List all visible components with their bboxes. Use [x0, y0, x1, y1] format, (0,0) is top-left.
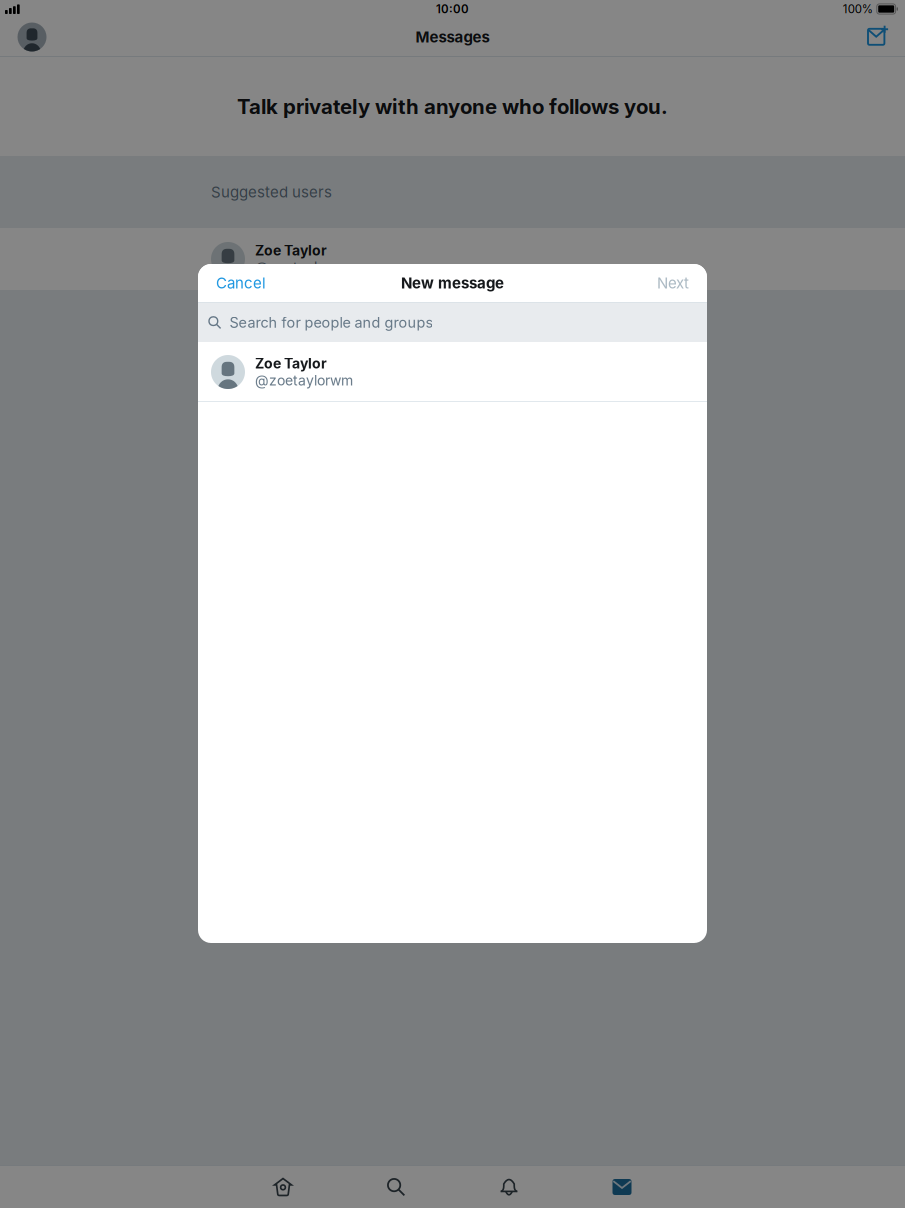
- button[interactable]: Next: [657, 265, 689, 301]
- button[interactable]: Search: [339, 1166, 452, 1208]
- button[interactable]: Profile: [0, 18, 64, 56]
- button[interactable]: Home: [226, 1166, 339, 1208]
- staticText: Suggested users: [211, 183, 332, 201]
- staticText: Cancel: [216, 274, 266, 292]
- staticText: Messages: [415, 28, 489, 46]
- staticText: 100%: [843, 2, 873, 16]
- button[interactable]: Zoe Taylor: [0, 228, 905, 290]
- staticText: New message: [401, 274, 504, 292]
- button[interactable]: Cancel: [216, 265, 266, 301]
- staticText: 10:00: [436, 2, 469, 16]
- button[interactable]: Messages: [565, 1166, 678, 1208]
- staticText: Search for people and groups: [229, 314, 433, 331]
- staticText: Talk privately with anyone who follows y…: [237, 94, 668, 119]
- button[interactable]: Zoe Taylor: [198, 342, 707, 402]
- staticText: @zoetaylorwm: [255, 259, 353, 276]
- staticText: @zoetaylorwm: [255, 372, 353, 389]
- staticText: Zoe Taylor: [255, 242, 327, 259]
- staticText: Next: [657, 274, 689, 292]
- button[interactable]: New message: [849, 18, 905, 56]
- button[interactable]: Notifications: [452, 1166, 565, 1208]
- staticText: Zoe Taylor: [255, 355, 327, 372]
